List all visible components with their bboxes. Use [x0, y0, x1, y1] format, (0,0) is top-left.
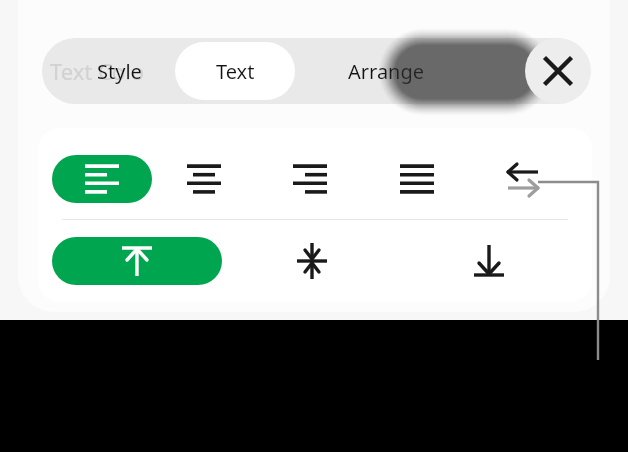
button[interactable]: Align right: [282, 151, 338, 207]
button[interactable]: Align left: [52, 155, 152, 203]
button[interactable]: Align top: [52, 237, 222, 285]
staticText: Style: [97, 58, 142, 85]
button[interactable]: Close: [525, 38, 591, 104]
staticText: Text Colo: [50, 56, 145, 86]
staticText: Arrange: [348, 58, 425, 85]
button[interactable]: Justify: [389, 151, 445, 207]
button[interactable]: Align bottom: [461, 233, 517, 289]
button[interactable]: Text: [175, 42, 295, 100]
button[interactable]: Style: [60, 38, 178, 104]
button[interactable]: Arrange: [318, 38, 454, 104]
button[interactable]: Align middle: [284, 233, 340, 289]
button[interactable]: Align center: [176, 151, 232, 207]
staticText: Text: [216, 58, 255, 85]
button[interactable]: Text direction: [495, 151, 551, 207]
